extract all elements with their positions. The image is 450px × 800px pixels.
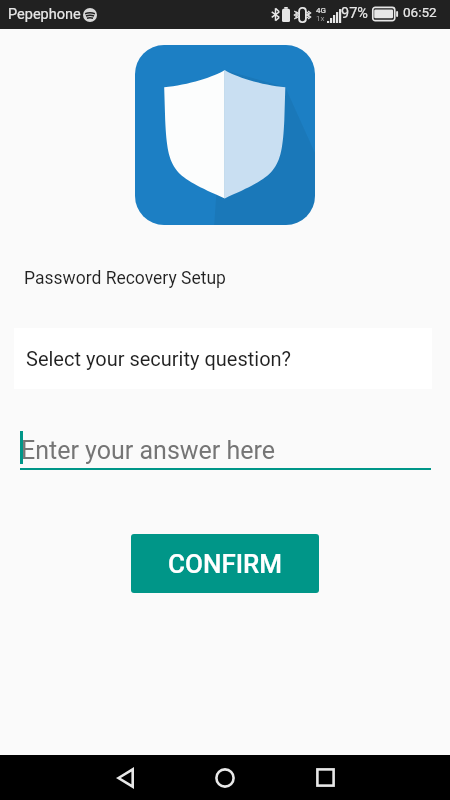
staticText: Password Recovery Setup — [24, 268, 226, 289]
staticText: Select your security question? — [26, 347, 292, 370]
button[interactable]: Home — [195, 755, 255, 800]
other: Security app logo — [135, 45, 315, 225]
staticText: 97% — [341, 5, 368, 22]
button[interactable]: CONFIRM — [131, 534, 319, 593]
button[interactable]: Recent apps — [295, 755, 355, 800]
staticText: 4G — [316, 6, 326, 15]
button[interactable]: Back — [95, 755, 155, 800]
staticText: 1x — [316, 14, 325, 23]
button[interactable]: Select your security question? — [14, 328, 432, 389]
staticText: Pepephone — [8, 6, 81, 23]
staticText: CONFIRM — [168, 549, 283, 579]
staticText: Enter your answer here — [21, 436, 276, 465]
button[interactable]: Enter your answer here — [20, 424, 431, 470]
staticText: 06:52 — [403, 4, 437, 20]
